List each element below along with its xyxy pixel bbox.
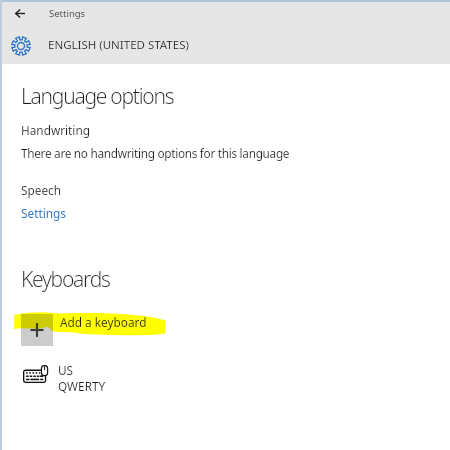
staticText: There are no handwriting options for thi… bbox=[21, 145, 290, 161]
staticText: US bbox=[58, 362, 74, 378]
staticText: QWERTY bbox=[58, 378, 106, 394]
staticText: Settings bbox=[49, 7, 86, 20]
staticText: Add a keyboard bbox=[60, 314, 147, 330]
staticText: Handwriting bbox=[21, 122, 90, 138]
button[interactable]: Back bbox=[6, 2, 36, 26]
button[interactable]: ENGLISH (UNITED STATES) bbox=[0, 31, 450, 60]
staticText: Keyboards bbox=[21, 265, 110, 294]
button[interactable]: US bbox=[0, 360, 450, 394]
staticText: Settings bbox=[21, 205, 66, 221]
button[interactable]: Settings bbox=[21, 205, 66, 221]
staticText: Speech bbox=[21, 182, 61, 198]
staticText: ENGLISH (UNITED STATES) bbox=[48, 37, 189, 53]
button[interactable]: Add a keyboard bbox=[0, 314, 450, 346]
staticText: Language options bbox=[21, 82, 174, 111]
